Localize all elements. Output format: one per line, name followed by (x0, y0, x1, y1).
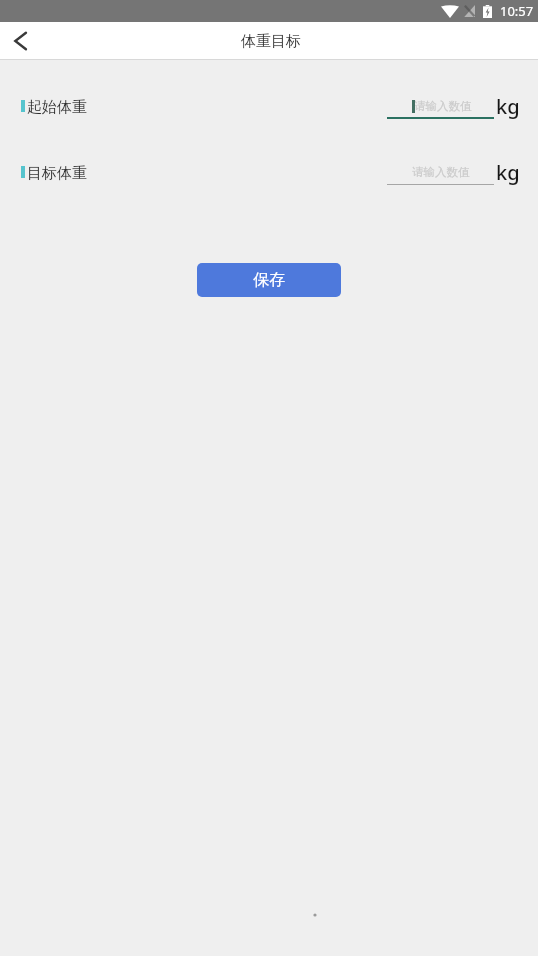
staticText: 起始体重 (27, 98, 87, 117)
staticText: 请输入数值 (412, 165, 470, 179)
staticText: kg (496, 159, 520, 185)
staticText: 10:57 (500, 2, 534, 20)
button[interactable]: 保存 (197, 263, 341, 297)
staticText: 保存 (253, 270, 285, 290)
staticText: 目标体重 (27, 164, 87, 183)
staticText: kg (496, 93, 520, 119)
button[interactable]: 请输入数值 (387, 92, 494, 118)
button[interactable]: Back (0, 22, 40, 59)
staticText: 请输入数值 (414, 99, 472, 113)
button[interactable]: 请输入数值 (387, 158, 494, 184)
staticText: 体重目标 (241, 32, 301, 51)
